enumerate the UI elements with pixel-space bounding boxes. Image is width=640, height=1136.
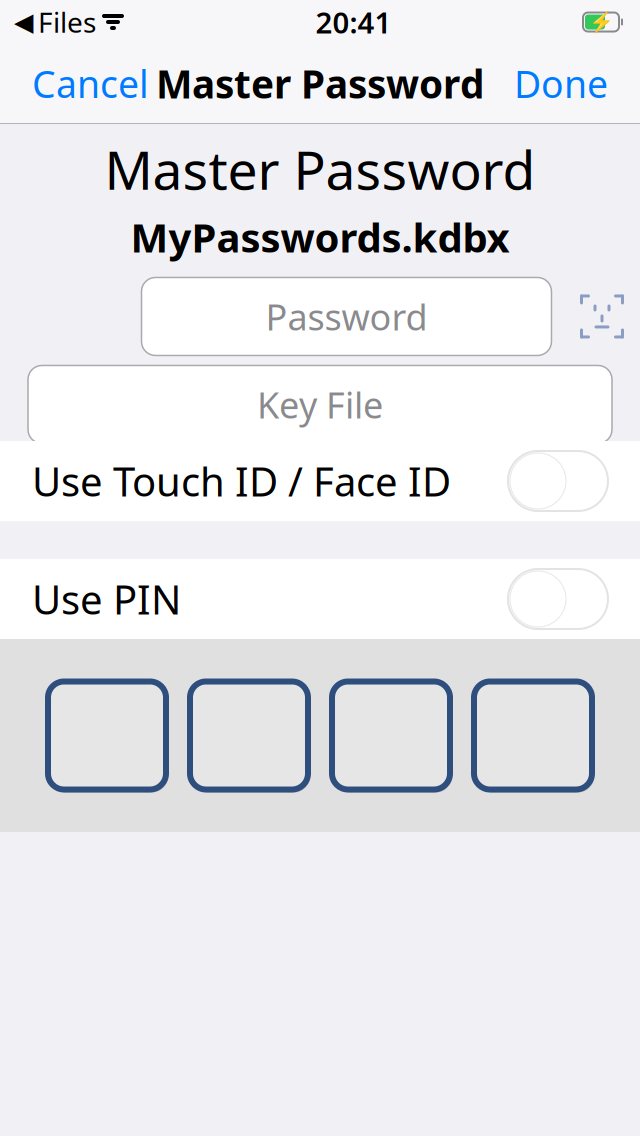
staticText: Files [38,3,96,41]
button[interactable]: PIN digit [329,676,453,794]
staticText: Master Password [104,133,535,204]
staticText: Password [265,293,427,340]
button[interactable]: PIN digit [471,676,595,794]
button[interactable]: Cancel [18,49,163,118]
staticText: MyPasswords.kdbx [130,210,509,263]
staticText: Use Touch ID / Face ID [32,454,451,507]
staticText: Key File [257,381,383,428]
button[interactable]: PIN digit [45,676,169,794]
staticText: ◀ [14,8,33,36]
button[interactable]: Use Touch ID / Face ID [0,441,640,521]
button[interactable]: Use PIN [0,559,640,639]
staticText: Cancel [32,59,149,108]
button[interactable]: Done [500,49,622,118]
staticText: Use PIN [32,572,181,625]
staticText: Master Password [156,58,484,109]
staticText: ⚡ [588,11,613,33]
staticText: 20:41 [315,2,391,41]
button[interactable]: Unlock with Face ID [580,294,624,338]
button[interactable]: PIN digit [187,676,311,794]
staticText: Done [514,59,608,108]
